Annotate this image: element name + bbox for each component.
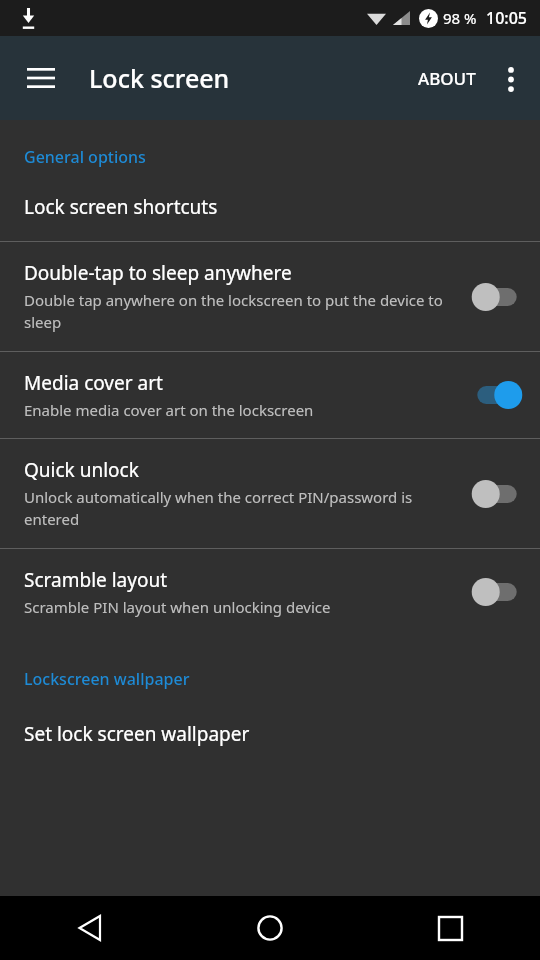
staticText: Lock screen shortcuts	[24, 194, 218, 220]
staticText: Quick unlock	[24, 457, 139, 483]
staticText: Set lock screen wallpaper	[24, 721, 250, 747]
staticText: Enable media cover art on the lockscreen	[24, 400, 314, 420]
staticText: Lock screen	[89, 61, 230, 95]
button[interactable]: Home	[180, 896, 360, 960]
staticText: Scramble PIN layout when unlocking devic…	[24, 597, 331, 617]
button[interactable]: Recent apps	[360, 896, 540, 960]
staticText: 10:05	[486, 7, 527, 29]
button[interactable]: Double-tap to sleep anywhere	[0, 242, 540, 351]
button[interactable]: Media cover art	[0, 352, 540, 438]
staticText: Media cover art	[24, 370, 163, 396]
staticText: Scramble layout	[24, 567, 168, 593]
staticText: Lockscreen wallpaper	[24, 668, 190, 690]
button[interactable]: Lock screen shortcuts	[0, 194, 540, 220]
staticText: 98 %	[443, 8, 477, 28]
staticText: ABOUT	[418, 67, 476, 90]
button[interactable]: Disabled	[471, 280, 523, 314]
button[interactable]: Enabled	[471, 378, 523, 412]
staticText: Unlock automatically when the correct PI…	[24, 487, 453, 530]
button[interactable]: ABOUT	[406, 51, 488, 106]
button[interactable]: Disabled	[471, 477, 523, 511]
button[interactable]: Set lock screen wallpaper	[0, 721, 540, 747]
staticText: Double tap anywhere on the lockscreen to…	[24, 290, 453, 333]
button[interactable]: Disabled	[471, 575, 523, 609]
button[interactable]: Quick unlock	[0, 439, 540, 548]
button[interactable]: More options	[488, 56, 534, 102]
staticText: General options	[24, 146, 146, 168]
button[interactable]: Back	[0, 896, 180, 960]
staticText: Double-tap to sleep anywhere	[24, 260, 292, 286]
button[interactable]: Scramble layout	[0, 549, 540, 635]
button[interactable]: Open navigation drawer	[14, 51, 68, 105]
